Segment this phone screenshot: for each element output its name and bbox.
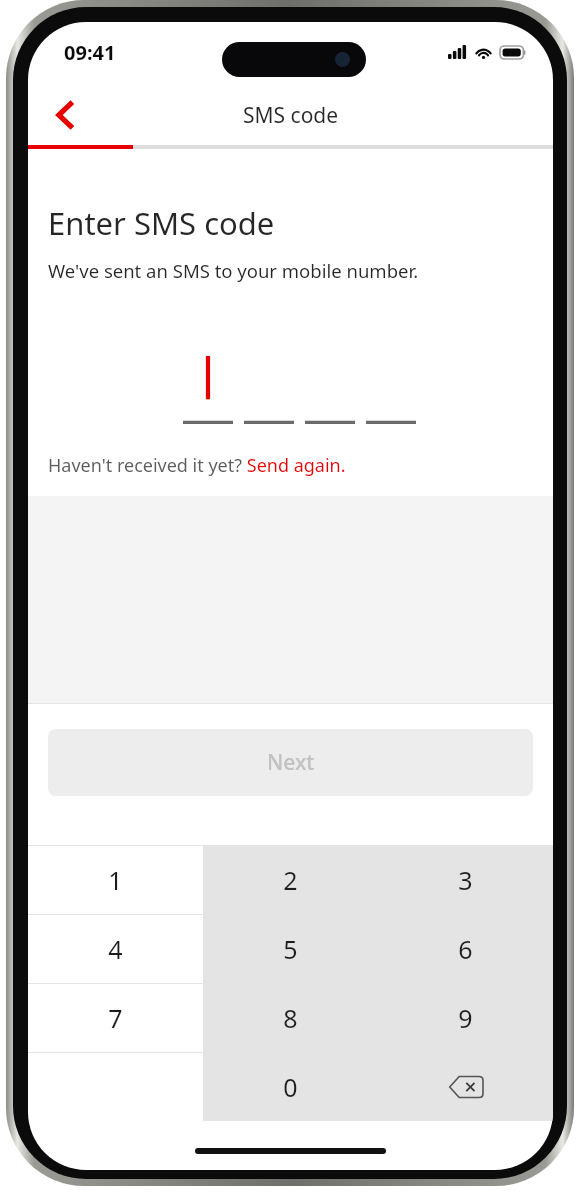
button[interactable] — [28, 348, 553, 428]
button[interactable]: 2 — [203, 846, 378, 914]
button[interactable]: 0 — [203, 1053, 378, 1121]
staticText: 7 — [108, 1001, 123, 1035]
button[interactable]: 1 — [28, 846, 203, 914]
staticText: SMS code — [243, 101, 339, 130]
button[interactable]: 6 — [378, 915, 553, 983]
button[interactable]: Next — [48, 729, 533, 796]
button[interactable]: Back — [38, 87, 94, 143]
button[interactable]: 9 — [378, 984, 553, 1052]
button[interactable]: 3 — [378, 846, 553, 914]
staticText: 3 — [458, 863, 473, 897]
staticText: 09:41 — [64, 39, 116, 66]
staticText: 2 — [283, 863, 298, 897]
staticText: 5 — [283, 932, 298, 966]
staticText: 6 — [458, 932, 473, 966]
button[interactable]: Haven't received it yet? Send again. — [48, 453, 346, 478]
staticText: 8 — [283, 1001, 298, 1035]
button[interactable]: Backspace — [378, 1053, 553, 1121]
staticText: 9 — [458, 1001, 473, 1035]
button[interactable]: 8 — [203, 984, 378, 1052]
staticText: Enter SMS code — [48, 202, 275, 244]
staticText: Next — [267, 748, 315, 777]
staticText: 1 — [108, 863, 123, 897]
staticText: 4 — [108, 932, 123, 966]
button[interactable]: 5 — [203, 915, 378, 983]
staticText: We've sent an SMS to your mobile number. — [48, 258, 419, 283]
button[interactable]: 7 — [28, 984, 203, 1052]
button[interactable]: 4 — [28, 915, 203, 983]
staticText: 0 — [283, 1070, 298, 1104]
